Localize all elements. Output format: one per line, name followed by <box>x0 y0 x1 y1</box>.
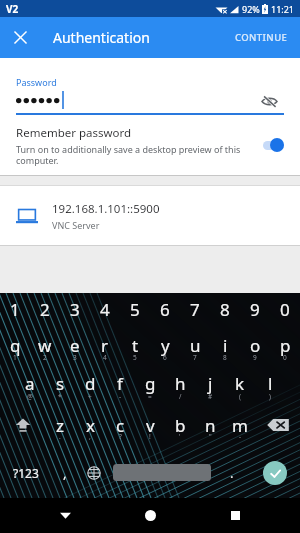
button[interactable]: k <box>225 364 255 403</box>
button[interactable]: Remember password <box>0 120 300 170</box>
staticText: t <box>132 334 139 357</box>
staticText: n <box>205 414 216 437</box>
staticText: c <box>116 414 125 437</box>
button[interactable]: t <box>120 326 150 364</box>
button[interactable]: 0 <box>270 293 300 326</box>
staticText: m <box>232 414 248 437</box>
staticText: 11:21 <box>271 3 295 15</box>
button[interactable]: Enter <box>249 447 300 498</box>
staticText: ?123 <box>13 465 39 481</box>
staticText: 6 <box>163 353 167 362</box>
staticText: , <box>89 432 91 441</box>
staticText: Password <box>16 76 57 88</box>
staticText: g <box>145 372 156 395</box>
button[interactable]: p <box>270 326 300 364</box>
staticText: o <box>250 334 261 357</box>
staticText: b <box>175 414 186 437</box>
staticText: Turn on to additionally save a desktop p… <box>16 143 247 166</box>
staticText: = <box>148 392 152 401</box>
staticText: a <box>25 372 35 395</box>
staticText: V2 <box>6 2 19 16</box>
staticText: Authentication <box>53 28 150 47</box>
button[interactable]: z <box>45 403 75 447</box>
staticText: . <box>230 464 234 482</box>
button[interactable]: a <box>15 364 45 403</box>
button[interactable]: u <box>180 326 210 364</box>
staticText: 7 <box>190 298 200 321</box>
button[interactable]: b <box>165 403 195 447</box>
staticText: u <box>190 334 201 357</box>
staticText: s <box>56 372 65 395</box>
button[interactable]: 7 <box>180 293 210 326</box>
button[interactable]: 3 <box>60 293 90 326</box>
staticText: q <box>10 334 21 357</box>
button[interactable]: w <box>30 326 60 364</box>
staticText: d <box>85 372 96 395</box>
button[interactable]: o <box>240 326 270 364</box>
button[interactable]: . <box>215 447 249 498</box>
staticText: 4 <box>103 353 107 362</box>
staticText: w <box>38 334 52 357</box>
staticText: # <box>208 392 213 401</box>
button[interactable]: Backspace <box>255 403 300 447</box>
button[interactable]: v <box>135 403 165 447</box>
button[interactable]: Toggle password visibility <box>257 89 281 113</box>
button[interactable]: ?123 <box>0 447 51 498</box>
staticText: 8 <box>223 353 227 362</box>
button[interactable]: 4 <box>90 293 120 326</box>
staticText: 192.168.1.101::5900 <box>52 201 160 217</box>
button[interactable]: Space <box>109 447 215 498</box>
button[interactable]: , <box>51 447 79 498</box>
button[interactable]: h <box>165 364 195 403</box>
button[interactable]: e <box>60 326 90 364</box>
button[interactable]: i <box>210 326 240 364</box>
button[interactable]: CONTINUE <box>226 23 297 52</box>
button[interactable]: l <box>255 364 285 403</box>
staticText: f <box>117 372 123 395</box>
staticText: l <box>268 372 273 395</box>
button[interactable]: s <box>45 364 75 403</box>
staticText: 3 <box>73 353 77 362</box>
button[interactable]: 192.168.1.101::5900 <box>0 186 300 245</box>
staticText: 2 <box>40 298 50 321</box>
staticText: 0 <box>283 353 287 362</box>
staticText: 4 <box>100 298 110 321</box>
staticText: p <box>280 334 291 357</box>
button[interactable]: d <box>75 364 105 403</box>
staticText: ( <box>239 392 241 401</box>
button[interactable]: g <box>135 364 165 403</box>
button[interactable]: Home <box>130 498 170 533</box>
button[interactable]: Back <box>45 498 85 533</box>
staticText: 6 <box>160 298 170 321</box>
staticText: , <box>63 464 67 482</box>
button[interactable]: 5 <box>120 293 150 326</box>
staticText: 9 <box>253 353 257 362</box>
button[interactable]: 9 <box>240 293 270 326</box>
button[interactable]: c <box>105 403 135 447</box>
button[interactable]: f <box>105 364 135 403</box>
button[interactable]: y <box>150 326 180 364</box>
staticText: / <box>179 392 182 401</box>
button[interactable]: r <box>90 326 120 364</box>
button[interactable]: Recents <box>215 498 255 533</box>
button[interactable]: n <box>195 403 225 447</box>
staticText: . <box>59 432 61 441</box>
staticText: x <box>86 414 95 437</box>
button[interactable]: 8 <box>210 293 240 326</box>
button[interactable]: Change language <box>79 447 109 498</box>
button[interactable]: j <box>195 364 225 403</box>
button[interactable]: x <box>75 403 105 447</box>
staticText: 2 <box>43 353 47 362</box>
button[interactable]: 6 <box>150 293 180 326</box>
button[interactable]: 1 <box>0 293 30 326</box>
button[interactable]: Shift <box>0 403 45 447</box>
staticText: y <box>161 334 170 357</box>
staticText: ! <box>149 432 151 441</box>
staticText: k <box>235 372 245 395</box>
button[interactable]: Close <box>4 21 37 54</box>
button[interactable]: 2 <box>30 293 60 326</box>
staticText: v <box>146 414 155 437</box>
staticText: 5 <box>133 353 137 362</box>
button[interactable]: q <box>0 326 30 364</box>
button[interactable]: m <box>225 403 255 447</box>
